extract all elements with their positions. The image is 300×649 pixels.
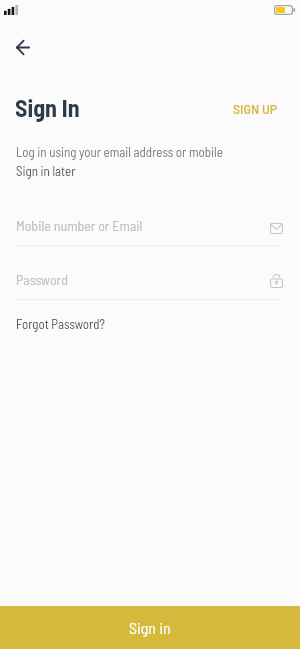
button[interactable]: Mobile number or Email xyxy=(0,209,300,243)
button[interactable]: Sign in xyxy=(0,606,300,649)
staticText: Sign in xyxy=(129,618,171,637)
staticText: Log in using your email address or mobil… xyxy=(16,144,223,160)
button[interactable]: Forgot Password? xyxy=(16,316,105,332)
button[interactable]: Back xyxy=(1,25,45,69)
staticText: Sign In xyxy=(15,93,80,122)
staticText: Mobile number or Email xyxy=(16,217,143,234)
staticText: Sign in later xyxy=(16,163,76,179)
button[interactable]: Sign in later xyxy=(16,163,76,179)
staticText: Password xyxy=(16,271,68,288)
staticText: Forgot Password? xyxy=(16,316,105,332)
button[interactable]: Password xyxy=(0,263,300,297)
button[interactable]: SIGN UP xyxy=(233,100,278,117)
staticText: SIGN UP xyxy=(233,100,278,117)
